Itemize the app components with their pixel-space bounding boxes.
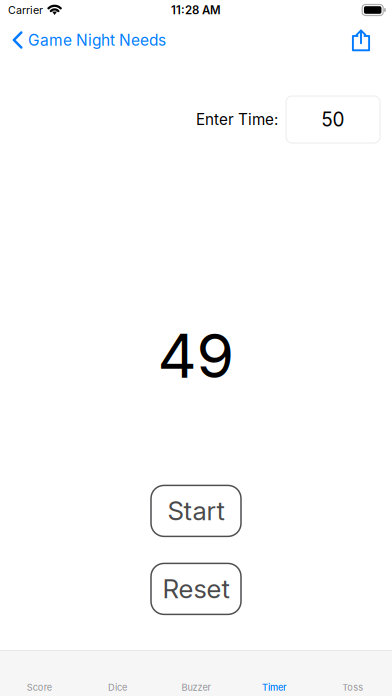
button[interactable]: Timer — [235, 651, 314, 696]
button[interactable]: Game Night Needs — [0, 27, 176, 53]
button[interactable]: Start — [151, 485, 241, 536]
staticText: 11:28 AM — [171, 3, 221, 17]
staticText: Carrier — [8, 3, 43, 16]
button[interactable]: Dice — [78, 651, 157, 696]
button[interactable]: Score — [0, 651, 78, 696]
staticText: 49 — [157, 319, 234, 392]
staticText: Buzzer — [181, 682, 210, 693]
staticText: Game Night Needs — [28, 31, 166, 49]
staticText: Score — [27, 682, 52, 693]
staticText: Timer — [262, 682, 287, 693]
button[interactable]: Reset — [151, 563, 241, 614]
staticText: Enter Time: — [196, 110, 278, 129]
button[interactable]: Buzzer — [157, 651, 235, 696]
staticText: Toss — [342, 682, 363, 693]
staticText: 50 — [321, 108, 344, 131]
staticText: Start — [167, 495, 224, 527]
staticText: Dice — [108, 682, 127, 693]
button[interactable]: Toss — [314, 651, 392, 696]
button[interactable]: Share — [340, 25, 392, 55]
staticText: Reset — [162, 573, 229, 605]
